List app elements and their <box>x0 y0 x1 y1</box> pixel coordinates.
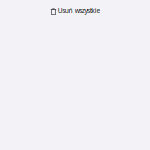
button[interactable]: Usuń <box>50 7 100 16</box>
staticText: wszystkie <box>75 6 100 15</box>
staticText: Usuń <box>58 6 72 15</box>
